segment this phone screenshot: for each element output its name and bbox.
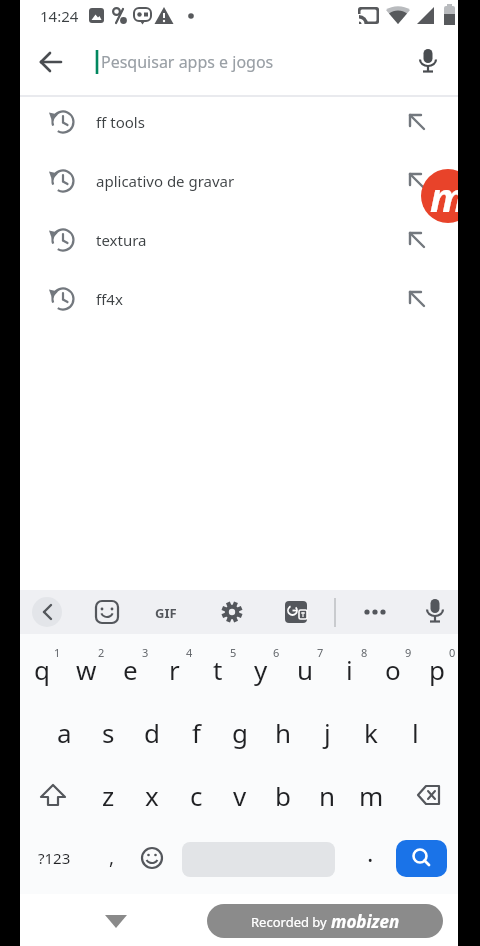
staticText: ff tools <box>96 112 145 132</box>
staticText: o <box>385 652 401 687</box>
button[interactable]: x <box>130 773 174 817</box>
staticText: g <box>232 715 248 750</box>
staticText: t <box>213 652 223 687</box>
button[interactable] <box>400 773 450 817</box>
staticText: GIF <box>155 604 177 622</box>
staticText: 5 <box>230 645 237 660</box>
button[interactable] <box>20 270 458 328</box>
button[interactable] <box>20 33 458 93</box>
staticText: 3 <box>142 645 149 660</box>
staticText: mobizen <box>331 910 400 933</box>
staticText: s <box>102 715 115 750</box>
button[interactable]: p <box>415 647 458 691</box>
button[interactable]: n <box>305 773 349 817</box>
staticText: ?123 <box>38 848 71 868</box>
button[interactable] <box>396 840 447 877</box>
staticText: z <box>102 778 115 813</box>
button[interactable] <box>146 592 186 632</box>
staticText: , <box>109 844 115 870</box>
staticText: c <box>190 778 203 813</box>
staticText: ff4x <box>96 289 123 309</box>
button[interactable] <box>105 912 127 930</box>
staticText: h <box>275 715 292 750</box>
button[interactable]: d <box>130 710 174 754</box>
staticText: 0 <box>449 645 456 660</box>
button[interactable]: w <box>64 647 108 691</box>
staticText: 2 <box>98 645 105 660</box>
button[interactable] <box>27 592 67 632</box>
staticText: 7 <box>317 645 324 660</box>
staticText: 6 <box>273 645 280 660</box>
button[interactable] <box>354 592 394 632</box>
staticText: m <box>430 169 458 223</box>
button[interactable] <box>20 211 458 269</box>
button[interactable]: y <box>239 647 283 691</box>
button[interactable]: z <box>86 773 130 817</box>
staticText: . <box>367 836 374 869</box>
staticText: aplicativo de gravar <box>96 171 235 191</box>
staticText: m <box>359 778 384 813</box>
button[interactable]: t <box>196 647 240 691</box>
staticText: e <box>123 652 138 687</box>
staticText: a <box>57 715 72 750</box>
button[interactable]: h <box>261 710 305 754</box>
staticText: 4 <box>186 645 193 660</box>
button[interactable]: Recorded by <box>207 904 443 938</box>
staticText: Pesquisar apps e jogos <box>101 51 274 73</box>
staticText: textura <box>96 230 147 250</box>
button[interactable]: s <box>86 710 130 754</box>
button[interactable] <box>415 592 455 632</box>
staticText: p <box>429 652 445 687</box>
staticText: x <box>145 778 159 813</box>
button[interactable] <box>276 592 316 632</box>
button[interactable] <box>212 592 252 632</box>
button[interactable]: o <box>371 647 415 691</box>
staticText: v <box>233 778 247 813</box>
staticText: n <box>319 778 336 813</box>
staticText: q <box>34 652 50 687</box>
staticText: u <box>297 652 314 687</box>
staticText: 8 <box>361 645 368 660</box>
button[interactable]: m <box>349 773 393 817</box>
button[interactable]: k <box>349 710 393 754</box>
button[interactable] <box>87 592 127 632</box>
button[interactable]: g <box>218 710 262 754</box>
button[interactable]: j <box>305 710 349 754</box>
button[interactable] <box>28 773 78 817</box>
button[interactable]: c <box>174 773 218 817</box>
button[interactable]: ?123 <box>30 844 78 872</box>
staticText: 14:24 <box>40 6 79 26</box>
button[interactable]: m <box>421 169 458 223</box>
staticText: f <box>192 715 201 750</box>
button[interactable]: u <box>283 647 327 691</box>
button[interactable] <box>20 152 458 210</box>
button[interactable]: q <box>20 647 64 691</box>
button[interactable]: b <box>261 773 305 817</box>
staticText: i <box>346 652 353 687</box>
button[interactable]: r <box>152 647 196 691</box>
button[interactable]: f <box>174 710 218 754</box>
staticText: y <box>254 652 268 687</box>
staticText: l <box>412 715 419 750</box>
staticText: w <box>76 652 97 687</box>
button[interactable]: . <box>358 832 382 872</box>
staticText: 9 <box>405 645 412 660</box>
button[interactable]: l <box>393 710 437 754</box>
staticText: 1 <box>54 645 61 660</box>
staticText: d <box>144 715 160 750</box>
staticText: r <box>169 652 180 687</box>
button[interactable]: v <box>218 773 262 817</box>
staticText: j <box>324 715 331 750</box>
button[interactable]: e <box>108 647 152 691</box>
button[interactable]: , <box>100 840 124 874</box>
staticText: k <box>364 715 378 750</box>
button[interactable] <box>20 93 458 151</box>
button[interactable]: i <box>327 647 371 691</box>
staticText: b <box>275 778 291 813</box>
staticText: Recorded by <box>251 913 331 931</box>
button[interactable]: a <box>42 710 86 754</box>
